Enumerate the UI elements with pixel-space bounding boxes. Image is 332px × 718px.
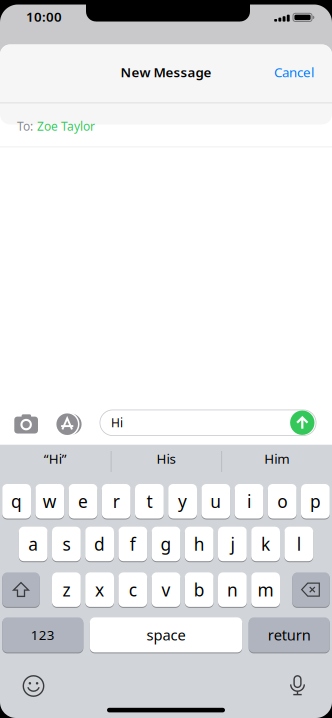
staticText: k (261, 532, 270, 555)
button[interactable]: k (251, 527, 280, 561)
staticText: “Hi” (44, 450, 67, 467)
button[interactable]: j (218, 527, 247, 561)
staticText: h (194, 532, 205, 555)
button[interactable]: 123 (2, 617, 83, 652)
button[interactable] (292, 572, 330, 607)
button[interactable]: To: (17, 104, 95, 148)
button[interactable]: b (185, 572, 214, 607)
staticText: t (146, 490, 152, 513)
staticText: Him (264, 450, 289, 467)
button[interactable]: z (52, 572, 81, 607)
button[interactable]: c (118, 572, 147, 607)
staticText: c (129, 578, 137, 601)
button[interactable] (290, 410, 314, 435)
button[interactable]: space (90, 617, 242, 652)
button[interactable]: return (249, 617, 330, 652)
button[interactable]: l (284, 527, 313, 561)
button[interactable]: v (152, 572, 180, 607)
staticText: w (43, 490, 57, 513)
button[interactable] (22, 675, 44, 697)
staticText: l (297, 532, 301, 555)
staticText: o (277, 490, 287, 513)
staticText: m (258, 578, 274, 601)
button[interactable]: f (118, 527, 147, 561)
staticText: g (160, 532, 171, 555)
staticText: r (113, 490, 120, 513)
staticText: return (268, 625, 311, 645)
staticText: z (62, 578, 70, 601)
button[interactable]: x (85, 572, 114, 607)
button[interactable] (2, 572, 40, 607)
button[interactable] (286, 675, 308, 696)
button[interactable]: p (301, 484, 330, 518)
staticText: e (78, 490, 88, 513)
button[interactable]: m (251, 572, 280, 607)
button[interactable]: Cancel (249, 57, 332, 87)
staticText: a (28, 532, 38, 555)
staticText: To: (17, 118, 33, 134)
button[interactable]: r (102, 484, 131, 518)
staticText: i (247, 490, 251, 513)
staticText: v (161, 578, 170, 601)
staticText: space (146, 625, 185, 645)
button[interactable]: a (19, 527, 48, 561)
button[interactable]: u (201, 484, 230, 518)
button[interactable]: Him (227, 443, 327, 473)
staticText: Zoe Taylor (37, 118, 95, 134)
button[interactable]: w (35, 484, 64, 518)
staticText: His (156, 450, 175, 467)
button[interactable]: i (235, 484, 263, 518)
staticText: f (130, 532, 136, 555)
staticText: n (227, 578, 238, 601)
staticText: 123 (31, 626, 55, 644)
staticText: p (310, 490, 321, 513)
button[interactable] (56, 413, 78, 435)
button[interactable]: h (185, 527, 214, 561)
staticText: b (194, 578, 205, 601)
button[interactable]: o (268, 484, 297, 518)
staticText: y (178, 490, 187, 513)
staticText: u (210, 490, 221, 513)
button[interactable]: d (85, 527, 114, 561)
staticText: Cancel (274, 63, 314, 81)
button[interactable]: “Hi” (5, 443, 105, 473)
button[interactable]: His (116, 443, 216, 473)
staticText: 10:00 (26, 8, 62, 25)
button[interactable]: g (152, 527, 180, 561)
staticText: s (62, 532, 70, 555)
staticText: x (95, 578, 104, 601)
button[interactable]: t (135, 484, 164, 518)
staticText: d (94, 532, 105, 555)
button[interactable]: e (69, 484, 97, 518)
staticText: Hi (111, 414, 123, 430)
button[interactable]: n (218, 572, 247, 607)
staticText: j (230, 532, 234, 555)
button[interactable]: q (2, 484, 31, 518)
button[interactable] (14, 414, 38, 433)
button[interactable]: y (168, 484, 197, 518)
staticText: q (11, 490, 22, 513)
staticText: New Message (120, 63, 211, 81)
button[interactable]: s (52, 527, 81, 561)
